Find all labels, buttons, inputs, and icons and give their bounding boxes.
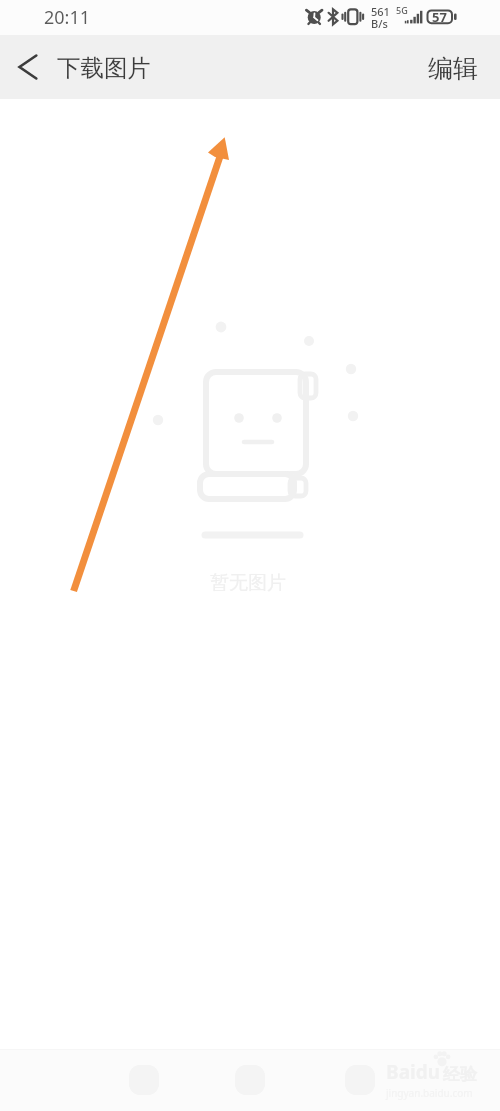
staticText: B/s (371, 16, 388, 31)
staticText: 561 (371, 4, 390, 19)
staticText: 20:11 (44, 5, 91, 30)
button[interactable]: 暂无图片 (0, 99, 500, 1111)
staticText: 57 (432, 8, 447, 26)
staticText: 5G (396, 4, 408, 16)
button[interactable]: Me (338, 1058, 382, 1102)
button[interactable]: Discover (228, 1058, 272, 1102)
button[interactable]: Back (0, 52, 161, 82)
button[interactable]: Home (122, 1058, 166, 1102)
staticText: Baidu (386, 1059, 441, 1085)
staticText: 下载图片 (57, 53, 151, 83)
staticText: 暂无图片 (210, 571, 286, 595)
other: Back (17, 54, 38, 80)
staticText: 经验 (443, 1064, 477, 1085)
staticText: 编辑 (428, 53, 478, 84)
button[interactable]: 编辑 (408, 42, 500, 93)
